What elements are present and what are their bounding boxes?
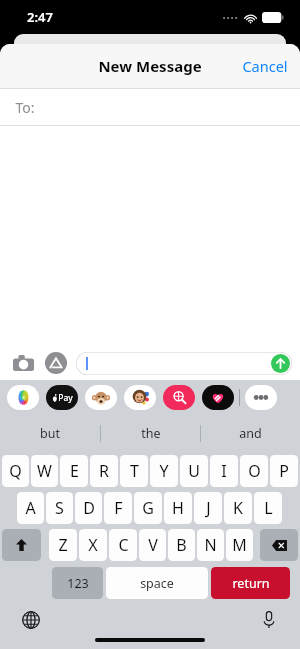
staticText: J: [206, 497, 211, 519]
button[interactable]: Camera: [8, 348, 38, 378]
staticText: I: [221, 460, 227, 482]
button[interactable]: Delete: [260, 529, 298, 561]
button[interactable]: E: [60, 455, 88, 487]
button[interactable]: Memoji: [85, 385, 117, 410]
staticText: H: [172, 497, 184, 519]
staticText: but: [40, 425, 60, 442]
staticText: V: [148, 534, 158, 556]
button[interactable]: but: [0, 415, 100, 451]
button[interactable]: K: [224, 492, 252, 524]
staticText: Pay: [58, 392, 73, 404]
staticText: A: [25, 497, 36, 519]
button[interactable]: App Store: [42, 349, 70, 377]
button[interactable]: F: [104, 492, 132, 524]
staticText: New Message: [98, 56, 202, 76]
button[interactable]: M: [226, 529, 253, 561]
button[interactable]: Images: [163, 385, 195, 410]
staticText: X: [88, 534, 98, 556]
staticText: space: [140, 575, 174, 592]
button[interactable]: 123: [52, 567, 103, 599]
staticText: E: [70, 460, 79, 482]
staticText: Q: [9, 460, 22, 482]
button[interactable]: H: [164, 492, 192, 524]
button[interactable]: Send: [76, 352, 292, 375]
staticText: U: [188, 460, 200, 482]
staticText: L: [264, 497, 273, 519]
staticText: K: [233, 497, 243, 519]
staticText: S: [55, 497, 64, 519]
staticText: 2:47: [27, 8, 53, 26]
button[interactable]: I: [210, 455, 238, 487]
staticText: C: [118, 534, 129, 556]
button[interactable]: X: [79, 529, 107, 561]
button[interactable]: A: [17, 492, 44, 524]
button[interactable]: G: [134, 492, 162, 524]
staticText: O: [248, 460, 261, 482]
staticText: and: [239, 425, 262, 442]
staticText: M: [232, 534, 247, 556]
button[interactable]: T: [120, 455, 148, 487]
staticText: B: [176, 534, 187, 556]
button[interactable]: Send: [271, 354, 290, 373]
staticText: W: [37, 460, 52, 482]
button[interactable]: To:: [0, 89, 300, 125]
staticText: R: [99, 460, 109, 482]
button[interactable]: L: [254, 492, 282, 524]
button[interactable]: J: [194, 492, 222, 524]
staticText: N: [204, 534, 217, 556]
button[interactable]: V: [139, 529, 166, 561]
button[interactable]: Q: [2, 455, 29, 487]
button[interactable]: W: [31, 455, 58, 487]
button[interactable]: P: [270, 455, 298, 487]
button[interactable]: Y: [150, 455, 178, 487]
button[interactable]: Dictate: [256, 607, 282, 633]
button[interactable]: C: [109, 529, 137, 561]
button[interactable]: Digital Touch: [202, 385, 234, 410]
staticText: T: [130, 460, 139, 482]
staticText: Y: [159, 460, 169, 482]
button[interactable]: D: [75, 492, 102, 524]
staticText: the: [141, 425, 161, 442]
staticText: G: [142, 497, 154, 519]
button[interactable]: Cancel: [230, 46, 300, 86]
button[interactable]: N: [197, 529, 224, 561]
staticText: F: [114, 497, 123, 519]
button[interactable]: space: [106, 567, 208, 599]
staticText: 123: [67, 575, 89, 592]
button[interactable]: Change keyboard: [18, 607, 44, 633]
button[interactable]: return: [211, 567, 290, 599]
staticText: P: [279, 460, 289, 482]
staticText: Z: [58, 534, 68, 556]
button[interactable]: B: [168, 529, 195, 561]
staticText: To:: [15, 98, 35, 117]
button[interactable]: Apple Pay: [46, 385, 78, 410]
button[interactable]: and: [201, 415, 300, 451]
button[interactable]: Photos: [7, 385, 39, 410]
button[interactable]: Z: [49, 529, 77, 561]
button[interactable]: R: [90, 455, 118, 487]
button[interactable]: Animoji: [124, 385, 156, 410]
staticText: D: [83, 497, 95, 519]
button[interactable]: O: [240, 455, 268, 487]
staticText: Cancel: [242, 56, 288, 76]
button[interactable]: the: [101, 415, 200, 451]
button[interactable]: S: [46, 492, 73, 524]
button[interactable]: Shift: [2, 529, 41, 561]
staticText: return: [232, 575, 270, 592]
button[interactable]: More: [245, 385, 277, 410]
button[interactable]: U: [180, 455, 208, 487]
